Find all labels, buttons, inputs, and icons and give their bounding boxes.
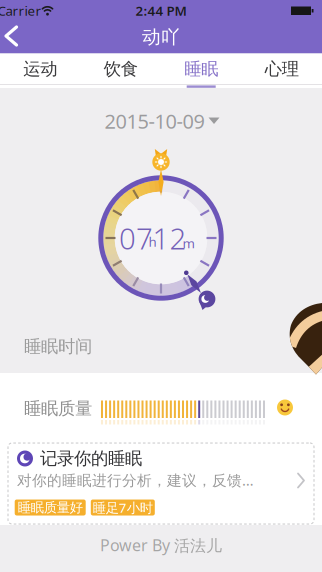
staticText: 睡足7小时 [93,499,153,516]
staticText: 2015-10-09 [104,108,204,134]
button[interactable]: 心理 [241,53,322,84]
staticText: 记录你的睡眠 [40,448,142,469]
staticText: 动吖 [142,25,180,48]
staticText: 睡眠质量好 [18,499,83,516]
staticText: h [149,233,157,250]
staticText: 对你的睡眠进行分析，建议，反馈… [17,470,254,490]
staticText: Carrier [0,2,41,19]
staticText: 饮食 [104,58,138,80]
button[interactable]: Back [0,20,28,52]
staticText: Power By 活法儿 [100,534,222,556]
staticText: 运动 [23,58,57,80]
staticText: 07 [119,218,153,257]
staticText: 睡眠质量 [24,398,92,419]
staticText: 睡眠 [184,58,218,80]
staticText: 2:44 PM [135,2,186,19]
button[interactable]: 2015-10-09 [104,108,219,134]
staticText: 12 [152,218,186,257]
button[interactable]: 运动 [0,53,80,84]
staticText: 心理 [265,58,299,80]
staticText: 睡眠时间 [24,336,92,357]
button[interactable]: 记录你的睡眠 [8,443,314,524]
staticText: m [182,234,194,252]
button[interactable]: 睡眠 [161,53,241,84]
button[interactable]: 饮食 [80,53,161,84]
